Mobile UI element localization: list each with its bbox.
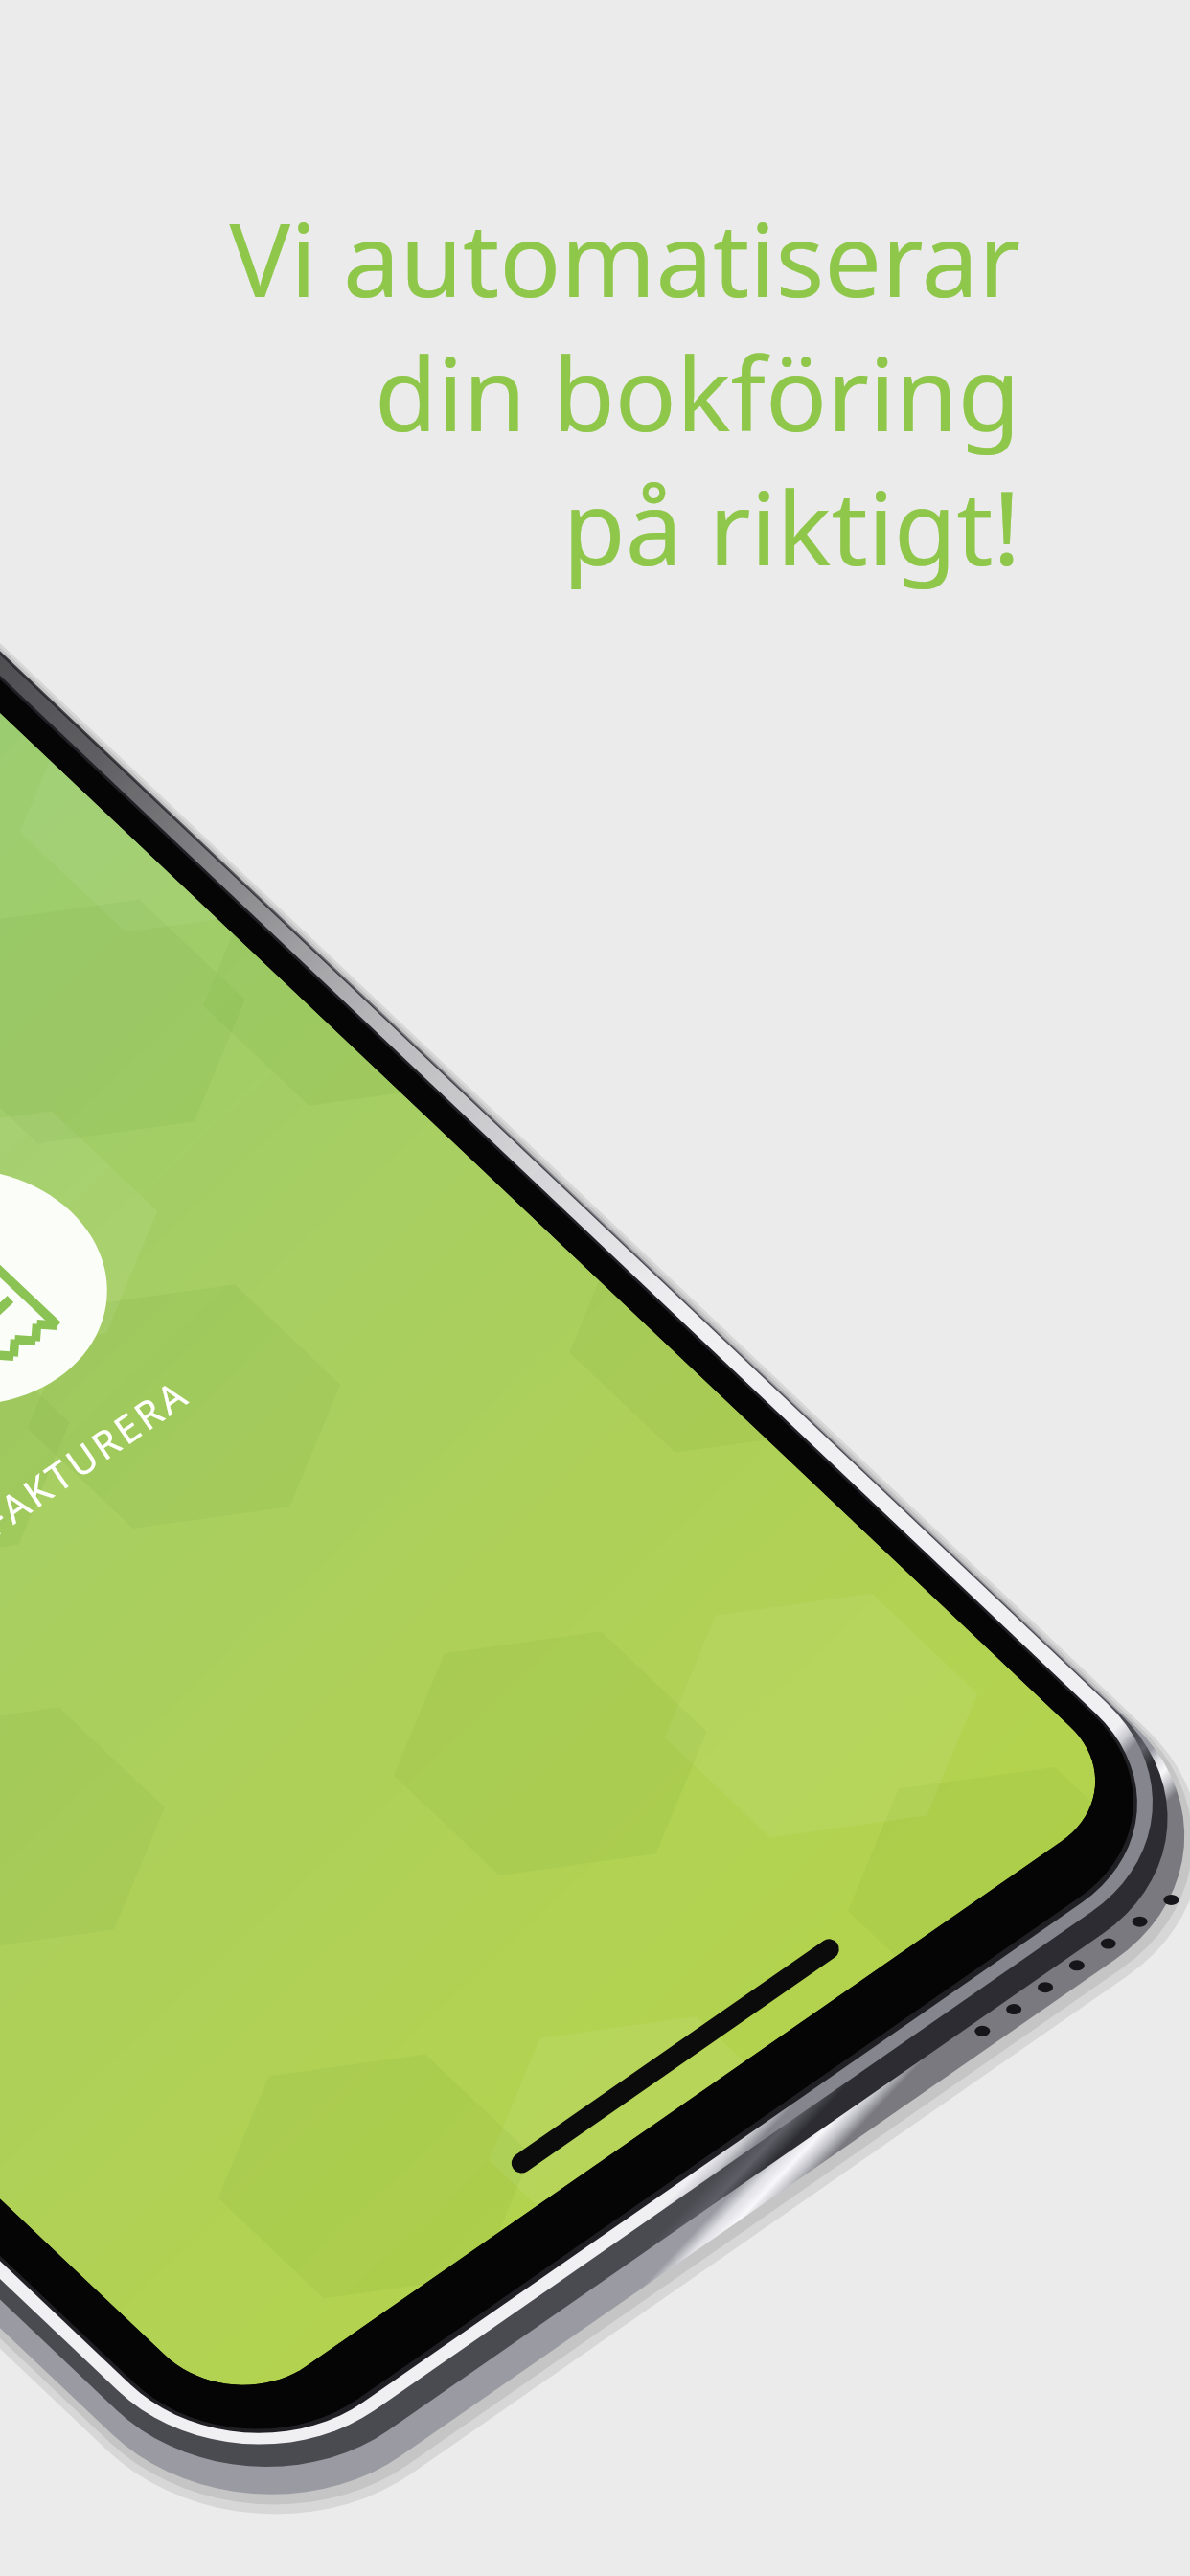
staticText: Vi automatiserar din bokföring på riktig… bbox=[229, 189, 1020, 595]
button[interactable]: Fakturera app bbox=[0, 1165, 117, 1426]
